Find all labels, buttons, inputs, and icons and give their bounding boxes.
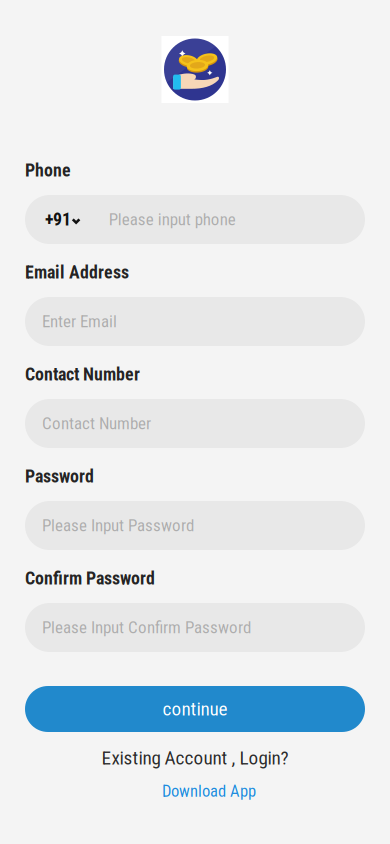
- button[interactable]: Existing Account , Login?: [0, 747, 390, 769]
- button[interactable]: Please Input Password: [25, 501, 365, 550]
- button[interactable]: Download App: [0, 783, 390, 803]
- button[interactable]: Enter Email: [25, 297, 365, 346]
- staticText: Confirm Password: [25, 568, 155, 589]
- staticText: Download App: [162, 781, 256, 801]
- staticText: Phone: [25, 160, 71, 181]
- staticText: Enter Email: [42, 312, 117, 331]
- staticText: Contact Number: [42, 414, 151, 433]
- staticText: Email Address: [25, 262, 129, 283]
- button[interactable]: Contact Number: [25, 399, 365, 448]
- staticText: Existing Account , Login?: [101, 747, 288, 769]
- staticText: continue: [162, 698, 227, 720]
- button[interactable]: +91: [25, 195, 365, 244]
- staticText: Please Input Confirm Password: [42, 618, 251, 637]
- button[interactable]: Please Input Confirm Password: [25, 603, 365, 652]
- staticText: Password: [25, 466, 94, 487]
- button[interactable]: continue: [25, 686, 365, 732]
- staticText: +91: [45, 209, 71, 230]
- staticText: Please input phone: [109, 210, 236, 229]
- staticText: Please Input Password: [42, 516, 194, 535]
- staticText: Contact Number: [25, 364, 140, 385]
